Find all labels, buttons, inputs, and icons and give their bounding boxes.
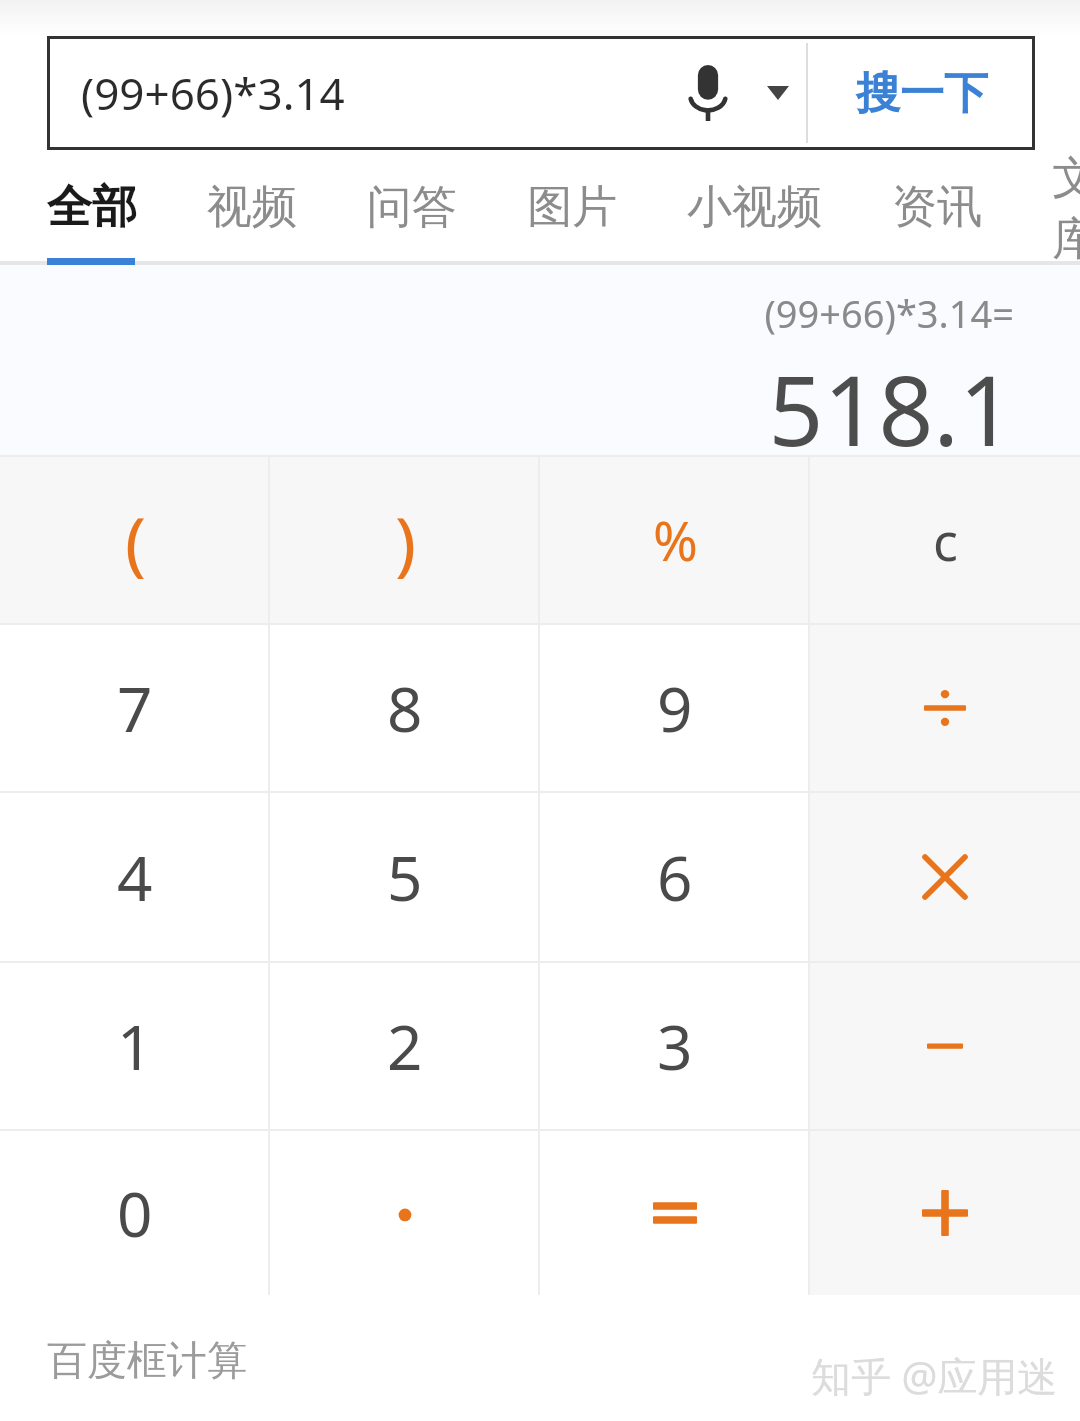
staticText: 8 bbox=[387, 666, 423, 750]
button[interactable]: (99+66)*3.14 bbox=[47, 36, 806, 150]
button[interactable]: Divide bbox=[810, 625, 1080, 791]
button[interactable]: 视频 bbox=[207, 150, 297, 265]
button[interactable] bbox=[270, 1131, 540, 1295]
button[interactable]: 问答 bbox=[367, 150, 457, 265]
button[interactable]: 6 bbox=[540, 793, 810, 961]
staticText: c bbox=[933, 505, 958, 576]
button[interactable]: 小视频 bbox=[687, 150, 822, 265]
staticText: ( bbox=[125, 493, 146, 588]
staticText: 视频 bbox=[207, 179, 297, 236]
button[interactable]: 全部 bbox=[47, 150, 137, 265]
staticText: 小视频 bbox=[687, 179, 822, 236]
button[interactable]: 图片 bbox=[527, 150, 617, 265]
button[interactable]: 4 bbox=[0, 793, 270, 961]
button[interactable]: 文库 bbox=[1052, 150, 1080, 265]
button[interactable]: ) bbox=[270, 457, 540, 623]
staticText: 搜一下 bbox=[856, 66, 988, 121]
button[interactable]: Multiply bbox=[810, 793, 1080, 961]
staticText: 知乎 @应用迷 bbox=[811, 1348, 1058, 1403]
button[interactable]: 0 bbox=[0, 1131, 270, 1295]
staticText: ) bbox=[395, 493, 416, 588]
button[interactable]: 3 bbox=[540, 963, 810, 1129]
button[interactable]: c bbox=[810, 457, 1080, 623]
button[interactable]: 资讯 bbox=[892, 150, 982, 265]
button[interactable]: Equals bbox=[540, 1131, 810, 1295]
staticText: 518.1 bbox=[768, 343, 1014, 455]
staticText: 问答 bbox=[367, 179, 457, 236]
staticText: 2 bbox=[387, 1004, 423, 1088]
staticText: 9 bbox=[657, 666, 693, 750]
button[interactable]: 5 bbox=[270, 793, 540, 961]
staticText: 4 bbox=[117, 835, 153, 919]
staticText: 5 bbox=[387, 835, 423, 919]
staticText: (99+66)*3.14 bbox=[81, 63, 666, 123]
button[interactable]: 百度框计算 bbox=[47, 1335, 247, 1385]
staticText: % bbox=[653, 503, 698, 577]
button[interactable]: 7 bbox=[0, 625, 270, 791]
button[interactable]: Minus bbox=[810, 963, 1080, 1129]
staticText: 0 bbox=[117, 1171, 153, 1255]
staticText: 图片 bbox=[527, 179, 617, 236]
staticText: 资讯 bbox=[892, 179, 982, 236]
staticText: 6 bbox=[657, 835, 693, 919]
staticText: 3 bbox=[657, 1004, 693, 1088]
button[interactable]: 1 bbox=[0, 963, 270, 1129]
button[interactable]: 8 bbox=[270, 625, 540, 791]
button[interactable]: % bbox=[540, 457, 810, 623]
staticText: 文库 bbox=[1052, 150, 1080, 265]
button[interactable]: 9 bbox=[540, 625, 810, 791]
button[interactable]: 2 bbox=[270, 963, 540, 1129]
button[interactable]: Voice search bbox=[666, 36, 750, 150]
staticText: 百度框计算 bbox=[47, 1335, 247, 1385]
button[interactable]: 搜一下 bbox=[808, 36, 1035, 150]
staticText: 7 bbox=[117, 666, 153, 750]
staticText: 全部 bbox=[47, 179, 137, 236]
button[interactable]: Plus bbox=[810, 1131, 1080, 1295]
button[interactable]: ( bbox=[0, 457, 270, 623]
button[interactable]: More options bbox=[750, 36, 806, 150]
staticText: (99+66)*3.14= bbox=[764, 287, 1014, 339]
staticText: 1 bbox=[117, 1004, 153, 1088]
